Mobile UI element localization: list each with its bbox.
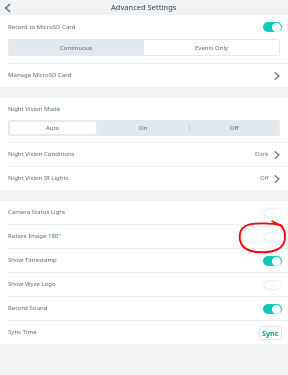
staticText: Night Vision IR Lights xyxy=(8,174,69,182)
staticText: Dark xyxy=(255,150,269,158)
button[interactable]: Rotate Image 180° xyxy=(0,225,288,248)
staticText: Off xyxy=(260,174,269,182)
staticText: Rotate Image 180° xyxy=(8,232,61,240)
button[interactable]: Manage MicroSD Card xyxy=(0,64,288,87)
button[interactable]: Camera Status Light xyxy=(0,201,288,224)
staticText: Show Timestamp xyxy=(8,256,57,264)
staticText: Off xyxy=(230,124,239,132)
staticText: Night Vision Mode xyxy=(8,105,61,113)
staticText: Record to MicroSD Card xyxy=(8,23,76,31)
button[interactable]: Record to MicroSD Card xyxy=(0,15,288,39)
button[interactable]: Events Only xyxy=(144,39,280,56)
staticText: On xyxy=(139,124,148,132)
button[interactable]: Night Vision Conditions xyxy=(0,143,288,166)
button[interactable]: Auto xyxy=(9,121,97,135)
staticText: Sync xyxy=(262,328,279,338)
staticText: Sync Time xyxy=(8,328,37,336)
staticText: Camera Status Light xyxy=(8,208,66,216)
button[interactable]: Continuous xyxy=(8,39,144,56)
button[interactable]: Back xyxy=(0,0,14,15)
staticText: Events Only xyxy=(195,44,229,52)
button[interactable]: Record Sound xyxy=(0,297,288,320)
staticText: Show Wyze Logo xyxy=(8,280,56,288)
button[interactable]: Show Wyze Logo xyxy=(0,273,288,296)
button[interactable]: On xyxy=(98,120,189,136)
staticText: Record Sound xyxy=(8,304,48,312)
staticText: Manage MicroSD Card xyxy=(8,71,72,79)
staticText: Auto xyxy=(46,124,60,132)
staticText: Continuous xyxy=(60,44,93,52)
button[interactable]: Show Timestamp xyxy=(0,249,288,272)
button[interactable]: Off xyxy=(189,120,280,136)
staticText: Advanced Settings xyxy=(111,2,177,12)
staticText: Night Vision Conditions xyxy=(8,150,75,158)
button[interactable]: Night Vision IR Lights xyxy=(0,167,288,190)
button[interactable]: Sync xyxy=(259,326,282,340)
